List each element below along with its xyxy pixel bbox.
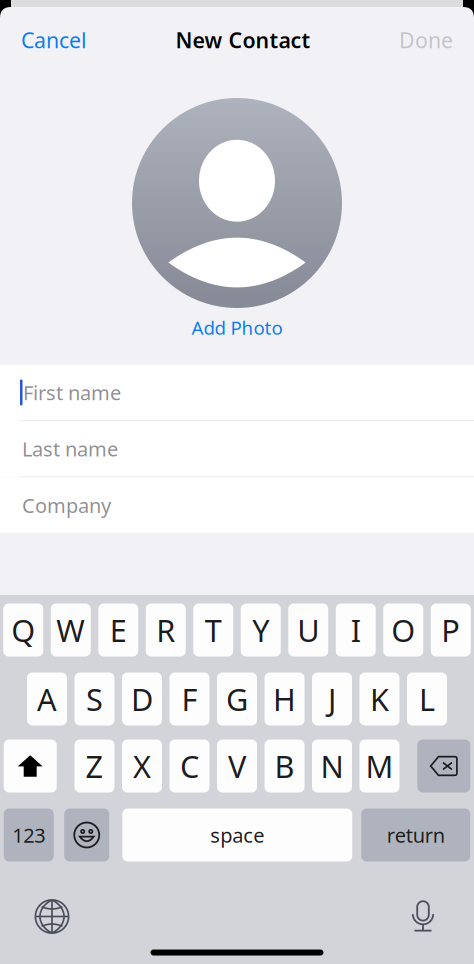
button[interactable]: Y — [241, 603, 281, 656]
staticText: First name — [23, 379, 121, 406]
staticText: Q — [11, 610, 35, 650]
button[interactable]: V — [217, 739, 257, 792]
button[interactable]: return — [361, 808, 470, 861]
button[interactable]: O — [383, 603, 423, 656]
button[interactable]: Dictation — [401, 894, 445, 938]
button[interactable]: S — [74, 672, 114, 725]
button[interactable]: M — [359, 739, 399, 792]
button[interactable]: 123 — [4, 808, 54, 861]
button[interactable]: J — [312, 672, 352, 725]
staticText: space — [210, 822, 264, 848]
staticText: Add Photo — [191, 315, 282, 340]
staticText: C — [180, 746, 199, 786]
staticText: K — [370, 679, 389, 719]
button[interactable]: C — [169, 739, 209, 792]
button[interactable]: G — [217, 672, 257, 725]
button[interactable]: Company — [0, 477, 474, 533]
button[interactable]: Next keyboard — [30, 894, 74, 938]
button[interactable]: Emoji — [64, 808, 109, 861]
button[interactable]: W — [51, 603, 91, 656]
button[interactable]: Delete — [417, 739, 470, 792]
button[interactable]: F — [169, 672, 209, 725]
button[interactable]: P — [431, 603, 471, 656]
staticText: New Contact — [175, 26, 310, 54]
button[interactable]: K — [359, 672, 399, 725]
staticText: U — [297, 610, 319, 650]
button[interactable]: X — [122, 739, 162, 792]
staticText: P — [441, 610, 460, 650]
button[interactable]: E — [98, 603, 138, 656]
button[interactable]: B — [264, 739, 304, 792]
button[interactable]: H — [264, 672, 304, 725]
staticText: M — [365, 746, 393, 786]
staticText: H — [273, 679, 296, 719]
button[interactable]: Z — [74, 739, 114, 792]
staticText: X — [133, 746, 151, 786]
staticText: Last name — [22, 435, 118, 462]
staticText: 123 — [12, 822, 45, 848]
button[interactable]: N — [312, 739, 352, 792]
button[interactable]: Add Photo — [0, 98, 474, 340]
staticText: Company — [22, 492, 111, 518]
staticText: B — [274, 746, 294, 786]
button[interactable]: T — [193, 603, 233, 656]
staticText: D — [131, 679, 153, 719]
staticText: V — [228, 746, 246, 786]
staticText: J — [328, 679, 336, 719]
staticText: F — [181, 679, 197, 719]
staticText: A — [37, 679, 57, 719]
button[interactable]: A — [27, 672, 67, 725]
button[interactable]: Last name — [0, 421, 474, 476]
staticText: I — [351, 610, 361, 650]
button[interactable]: Done — [399, 18, 453, 62]
staticText: L — [419, 679, 435, 719]
staticText: R — [156, 610, 175, 650]
staticText: S — [86, 679, 103, 719]
staticText: T — [205, 610, 222, 650]
staticText: Done — [399, 26, 453, 54]
staticText: O — [391, 610, 415, 650]
staticText: G — [226, 679, 248, 719]
staticText: E — [110, 610, 127, 650]
button[interactable]: Shift — [4, 739, 57, 792]
staticText: Y — [252, 610, 269, 650]
button[interactable]: I — [336, 603, 376, 656]
staticText: Z — [85, 746, 103, 786]
button[interactable]: Q — [3, 603, 43, 656]
staticText: Cancel — [21, 26, 87, 54]
button[interactable]: Cancel — [21, 18, 87, 62]
staticText: N — [320, 746, 343, 786]
button[interactable]: First name — [0, 365, 474, 420]
button[interactable]: U — [288, 603, 328, 656]
staticText: W — [56, 610, 85, 650]
staticText: return — [387, 822, 445, 848]
button[interactable]: L — [407, 672, 447, 725]
button[interactable]: R — [146, 603, 186, 656]
button[interactable]: space — [122, 808, 352, 861]
button[interactable]: D — [122, 672, 162, 725]
